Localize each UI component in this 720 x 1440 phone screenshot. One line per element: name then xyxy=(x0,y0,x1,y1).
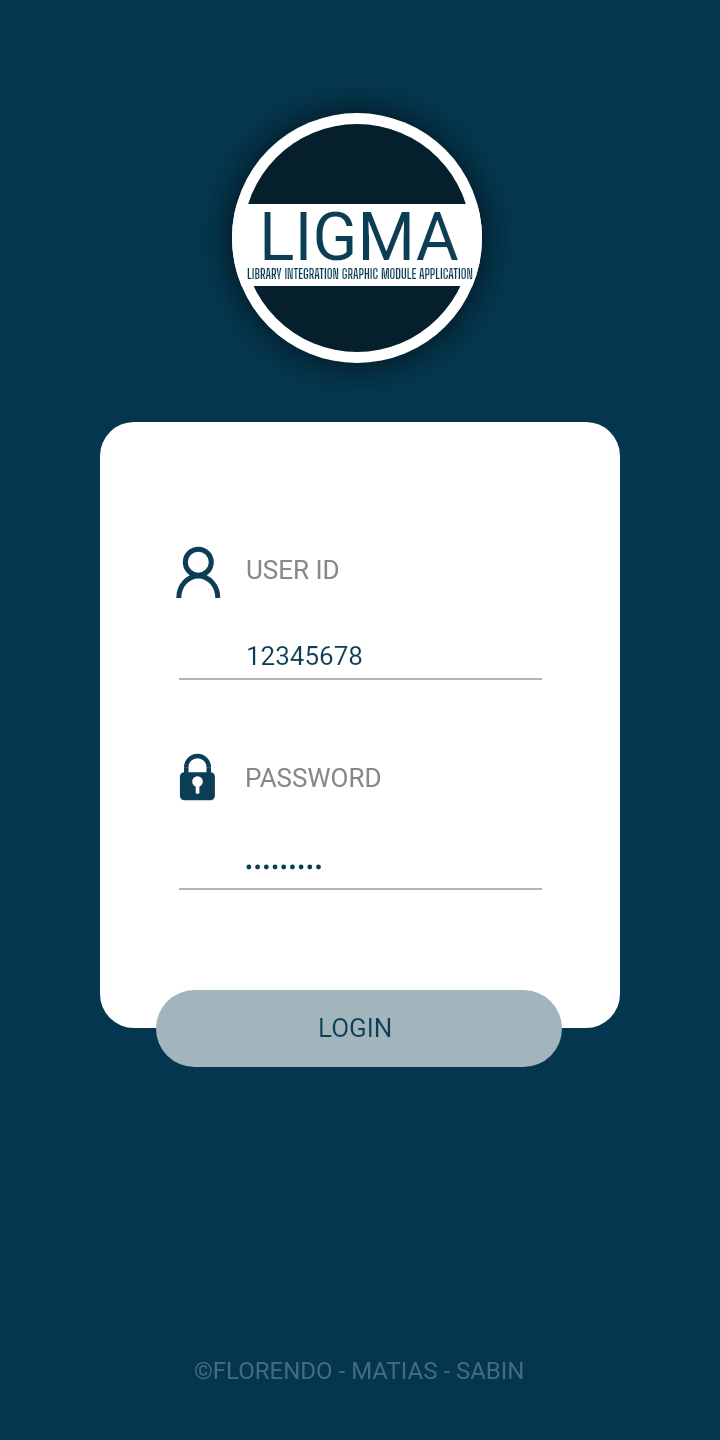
staticText: ©FLORENDO - MATIAS - SABIN xyxy=(194,1357,525,1385)
staticText: LOGIN xyxy=(318,1013,393,1043)
staticText: LIBRARY INTEGRATION GRAPHIC MODULE APPLI… xyxy=(247,266,473,282)
button[interactable]: LOGIN xyxy=(156,990,562,1067)
staticText: 12345678 xyxy=(246,641,363,671)
staticText: PASSWORD xyxy=(245,763,382,793)
button[interactable]: User ID xyxy=(179,540,542,682)
other: Password xyxy=(179,750,219,802)
other: User ID xyxy=(179,546,227,596)
staticText: LIGMA xyxy=(259,199,459,276)
staticText: USER ID xyxy=(246,555,340,585)
button[interactable]: Password xyxy=(179,748,542,890)
